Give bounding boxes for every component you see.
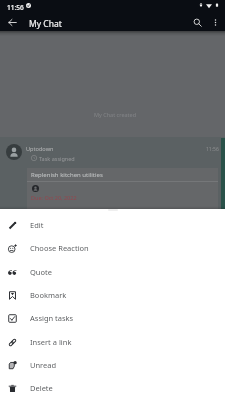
staticText: Uptodown [26, 145, 54, 153]
staticText: Assign tasks [30, 313, 74, 323]
staticText: Due: Oct 20, 2022 [31, 194, 77, 201]
button[interactable]: Quote [0, 261, 225, 284]
staticText: 11:56 [7, 3, 24, 12]
staticText: Task assigned [39, 155, 75, 162]
staticText: Insert a link [30, 337, 72, 347]
staticText: My Chat created [94, 111, 137, 118]
staticText: Choose Reaction [30, 243, 89, 253]
staticText: My Chat [29, 18, 62, 30]
button[interactable]: Insert a link [0, 331, 225, 354]
staticText: Quote [30, 267, 52, 277]
staticText: Unread [30, 360, 57, 370]
button[interactable]: Back [3, 14, 22, 31]
button[interactable]: Choose Reaction [0, 237, 225, 260]
button[interactable]: Delete [0, 377, 225, 400]
staticText: 11:56 [206, 146, 219, 153]
staticText: Replenish kitchen utilities [31, 171, 103, 179]
staticText: Edit [30, 220, 44, 230]
staticText: Bookmark [30, 290, 67, 300]
staticText: Delete [30, 383, 53, 393]
button[interactable]: Edit [0, 214, 225, 237]
button[interactable]: Assign tasks [0, 307, 225, 330]
button[interactable]: Unread [0, 354, 225, 377]
button[interactable]: More options [206, 14, 225, 31]
button[interactable]: Search [188, 14, 207, 31]
button[interactable]: Bookmark [0, 284, 225, 307]
